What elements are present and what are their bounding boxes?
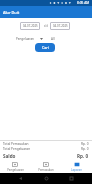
button[interactable]: Pengeluaran (0, 160, 30, 173)
staticText: Saldo (3, 153, 16, 159)
button[interactable]: 04-07-2025 (50, 22, 70, 30)
staticText: Laporan (71, 168, 82, 172)
staticText: Alur Duit (3, 10, 20, 15)
staticText: All (51, 37, 55, 41)
button[interactable]: Back (15, 173, 26, 184)
staticText: s/d (44, 24, 48, 28)
button[interactable]: Recent apps (66, 173, 77, 184)
button[interactable]: Laporan (61, 160, 92, 173)
staticText: Pengeluaran (7, 168, 24, 172)
staticText: Rp. 0 (81, 142, 89, 146)
button[interactable]: Pengeluaran (16, 37, 43, 41)
staticText: 04-07-2025 (23, 24, 38, 28)
button[interactable]: 04-07-2025 (20, 22, 40, 30)
staticText: Cari (42, 45, 49, 50)
staticText: Total Pemasukan (3, 142, 29, 146)
staticText: 8:05 AM (77, 1, 90, 5)
staticText: Pemasukan (38, 168, 54, 172)
button[interactable]: Cari (35, 43, 55, 52)
staticText: Total Pengeluaran (3, 147, 31, 151)
button[interactable]: Home (41, 173, 52, 184)
staticText: Rp. 0 (77, 153, 89, 159)
button[interactable]: Pemasukan (30, 160, 61, 173)
staticText: Rp. 0 (81, 147, 89, 151)
staticText: 04-07-2025 (53, 24, 68, 28)
staticText: Pengeluaran (16, 37, 34, 41)
button[interactable]: All (51, 37, 55, 41)
